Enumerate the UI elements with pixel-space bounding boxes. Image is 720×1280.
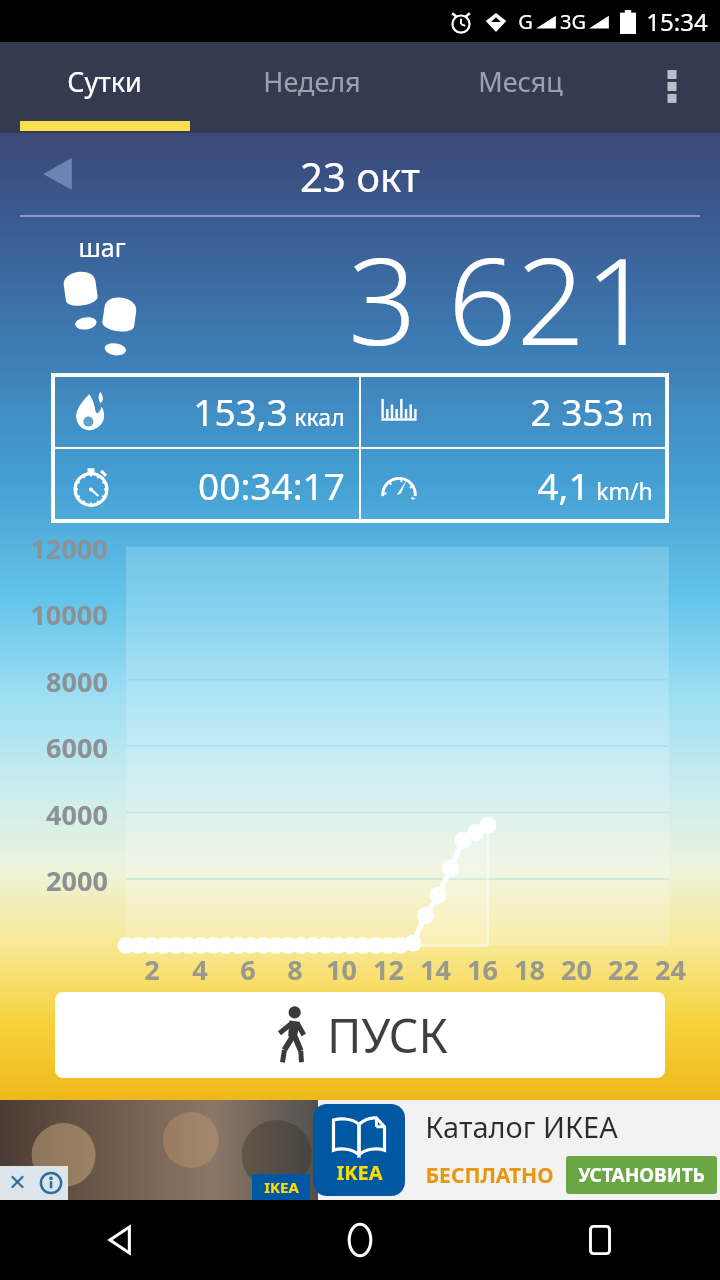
staticText: Сутки	[67, 63, 142, 100]
button[interactable]: Close ad	[0, 1166, 34, 1200]
button[interactable]: Неделя	[208, 42, 416, 133]
staticText: km/h	[596, 475, 653, 506]
staticText: ккал	[294, 401, 345, 432]
staticText: 3G	[560, 8, 586, 35]
button[interactable]: Ad info	[34, 1166, 68, 1200]
button[interactable]: ПУСК	[55, 992, 665, 1078]
staticText: 2	[144, 951, 160, 988]
staticText: 2000	[46, 862, 108, 899]
staticText: 8000	[46, 663, 108, 700]
staticText: IKEA	[264, 1177, 299, 1197]
staticText: 22	[608, 951, 639, 988]
staticText: 4	[192, 951, 208, 988]
staticText: 8	[287, 951, 303, 988]
button[interactable]: 4,1	[361, 449, 667, 521]
staticText: ПУСК	[327, 1003, 448, 1067]
staticText: БЕСПЛАТНО	[425, 1161, 554, 1190]
staticText: 18	[514, 951, 545, 988]
staticText: шаг	[78, 230, 126, 264]
staticText: Каталог ИКЕА	[425, 1107, 618, 1146]
staticText: 00:34:17	[198, 460, 345, 510]
staticText: 3 621	[348, 217, 654, 375]
staticText: 6	[240, 951, 256, 988]
button[interactable]: Previous day	[28, 144, 88, 204]
staticText: 23 окт	[300, 149, 420, 203]
button[interactable]: More options	[624, 42, 720, 133]
button[interactable]: Home	[240, 1200, 480, 1280]
staticText: 14	[420, 951, 451, 988]
staticText: 20	[561, 951, 592, 988]
button[interactable]: УСТАНОВИТЬ	[566, 1156, 717, 1194]
staticText: 24	[655, 951, 686, 988]
staticText: УСТАНОВИТЬ	[578, 1162, 705, 1188]
staticText: 12000	[30, 530, 108, 567]
staticText: ✕	[8, 1170, 27, 1196]
staticText: 153,3	[193, 386, 288, 436]
staticText: 4000	[46, 796, 108, 833]
staticText: 16	[467, 951, 498, 988]
button[interactable]: 00:34:17	[53, 449, 359, 521]
button[interactable]: Back	[0, 1200, 240, 1280]
button[interactable]: Сутки	[0, 42, 208, 133]
button[interactable]: Recent apps	[480, 1200, 720, 1280]
staticText: Неделя	[263, 63, 361, 100]
staticText: 10000	[30, 596, 108, 633]
staticText: 12	[373, 951, 404, 988]
staticText: 10	[326, 951, 357, 988]
staticText: IKEA	[336, 1159, 383, 1186]
button[interactable]: 2 353	[361, 375, 667, 447]
staticText: 6000	[46, 729, 108, 766]
staticText: 15:34	[646, 5, 708, 38]
button[interactable]: IKEA	[0, 1100, 720, 1200]
staticText: G	[518, 8, 533, 35]
staticText: 4,1	[537, 460, 590, 510]
staticText: Месяц	[478, 63, 563, 100]
button[interactable]: Месяц	[416, 42, 624, 133]
staticText: m	[631, 401, 653, 432]
button[interactable]: 153,3	[53, 375, 359, 447]
staticText: 2 353	[530, 386, 625, 436]
